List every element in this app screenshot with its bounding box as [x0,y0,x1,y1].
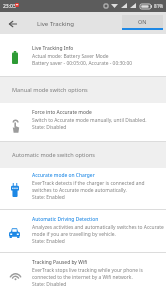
staticText: Switch to Accurate mode manually, until … [32,117,147,131]
staticText: Analyzes activities and automatically sw… [32,224,165,245]
staticText: Manual mode switch options [12,86,88,94]
staticText: Tracking Paused by Wifi [32,259,88,266]
button[interactable]: Back [6,17,20,31]
staticText: 81% [154,3,164,9]
staticText: Accurate mode on Charger [32,172,95,179]
staticText: Live Tracking Info [32,45,74,52]
staticText: EverTrack stops live tracking while your… [32,267,165,288]
staticText: Automatic Driving Detection [32,216,99,223]
staticText: Live Tracking [37,19,75,27]
button[interactable]: Live Tracking Info [0,34,166,76]
staticText: ON [138,18,147,25]
button[interactable]: Accurate mode on Charger [0,168,166,209]
staticText: Force into Accurate mode [32,109,92,116]
button[interactable]: ON [122,15,163,30]
button[interactable]: Automatic Driving Detection [0,210,166,252]
button[interactable]: Force into Accurate mode [0,103,166,141]
staticText: 23:03 [3,3,16,10]
staticText: EverTrack detects if the charger is conn… [32,180,165,201]
button[interactable]: Tracking Paused by Wifi [0,253,166,296]
staticText: Automatic mode switch options [12,151,96,159]
staticText: Actual mode: Battery Saver Mode Battery … [32,53,133,67]
